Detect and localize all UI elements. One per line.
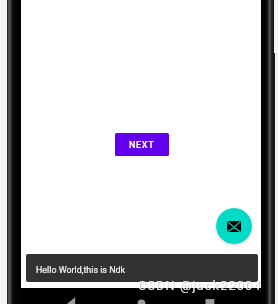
staticText: CSDN @jack22004	[138, 278, 262, 293]
button[interactable]: Recent apps	[186, 288, 226, 304]
button[interactable]: Compose email	[216, 208, 252, 244]
button[interactable]: Back	[61, 288, 101, 304]
button[interactable]: NEXT	[115, 133, 169, 156]
staticText: NEXT	[129, 140, 155, 151]
button[interactable]: Home	[121, 288, 161, 304]
button[interactable]: Hello World,this is Ndk	[26, 254, 258, 282]
staticText: CSDN @jack22004	[139, 279, 263, 294]
staticText: Hello World,this is Ndk	[36, 265, 125, 275]
